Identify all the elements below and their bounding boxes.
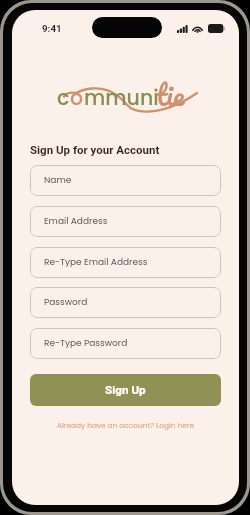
staticText: o [70,83,84,112]
button[interactable]: Name [30,165,221,196]
staticText: Password [44,296,88,309]
staticText: Re-Type Password [44,337,128,350]
staticText: Email Address [44,215,108,228]
staticText: Name [44,174,72,187]
button[interactable]: Re-Type Email Address [30,247,221,278]
staticText: tie [156,71,185,111]
button[interactable]: Email Address [30,206,221,237]
staticText: Sign Up for your Account [30,143,160,156]
staticText: Re-Type Email Address [44,256,148,269]
staticText: mmuni [84,83,159,112]
staticText: c [57,83,70,112]
staticText: Sign Up [105,383,146,397]
button[interactable]: Password [30,287,221,318]
button[interactable]: Sign Up [30,374,221,406]
button[interactable]: Re-Type Password [30,328,221,359]
button[interactable]: Already have an account? Login here [12,420,239,430]
staticText: 9:41 [42,23,62,34]
